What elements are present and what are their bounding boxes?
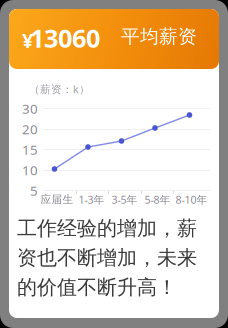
staticText: （薪资：k）: [29, 82, 90, 96]
staticText: 8-10年: [175, 192, 207, 207]
staticText: 平均薪资: [121, 25, 197, 48]
staticText: 15: [22, 141, 38, 158]
staticText: 工作经验的增加，薪资也不断增加，未来的价值不断升高！: [17, 216, 197, 300]
staticText: 应届生: [40, 193, 73, 206]
staticText: 20: [22, 120, 38, 138]
staticText: 1-3年: [78, 192, 104, 207]
staticText: 5: [30, 182, 38, 199]
staticText: ¥: [22, 27, 33, 54]
staticText: 10: [22, 161, 38, 179]
staticText: 13060: [30, 21, 100, 55]
staticText: 30: [22, 100, 38, 117]
staticText: 5-8年: [144, 192, 170, 207]
staticText: 3-5年: [111, 192, 137, 207]
